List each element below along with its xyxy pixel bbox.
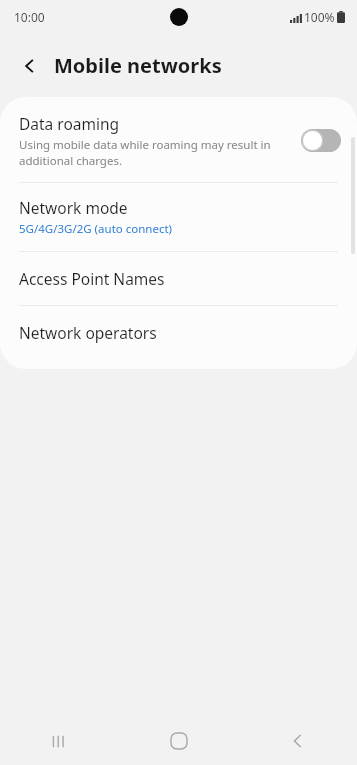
- button[interactable]: Data roaming: [0, 97, 357, 182]
- button[interactable]: Back: [238, 717, 357, 765]
- staticText: Network mode: [19, 197, 128, 218]
- staticText: 5G/4G/3G/2G (auto connect): [19, 221, 173, 237]
- staticText: Data roaming: [19, 113, 120, 134]
- button[interactable]: Back: [12, 48, 48, 84]
- staticText: Using mobile data while roaming may resu…: [19, 137, 272, 168]
- button[interactable]: Access Point Names: [0, 252, 357, 305]
- staticText: Access Point Names: [19, 268, 165, 289]
- button[interactable]: Network operators: [0, 306, 357, 359]
- button[interactable]: Recents: [0, 717, 119, 765]
- button[interactable]: Network mode: [0, 183, 357, 251]
- button[interactable]: Home: [119, 717, 238, 765]
- staticText: Network operators: [19, 322, 157, 343]
- button[interactable]: Data roaming toggle: [301, 129, 341, 152]
- staticText: 100%: [304, 9, 335, 25]
- staticText: Mobile networks: [54, 52, 222, 79]
- staticText: 10:00: [14, 9, 45, 25]
